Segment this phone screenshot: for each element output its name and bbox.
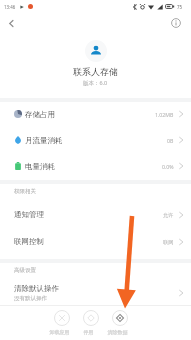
staticText: 清除默认操作 (14, 284, 59, 293)
button[interactable]: 存储占用 (0, 102, 191, 128)
staticText: 联网 (163, 239, 174, 246)
staticText: 权限相关 (14, 188, 36, 195)
staticText: 没有默认操作 (14, 295, 47, 302)
button[interactable]: 卸载应用 (47, 306, 76, 335)
staticText: 13:46 (4, 4, 16, 10)
staticText: 停用 (74, 329, 103, 335)
staticText: 月流量消耗 (25, 136, 63, 145)
staticText: 0B (167, 137, 174, 144)
staticText: 电量消耗 (25, 162, 55, 171)
staticText: 0.0% (162, 163, 174, 170)
button[interactable]: 通知管理 (0, 202, 191, 229)
staticText: 通知管理 (14, 210, 44, 219)
staticText: 高级设置 (14, 267, 36, 274)
staticText: 存储占用 (25, 110, 55, 119)
staticText: 联系人存储 (73, 66, 118, 77)
button[interactable]: 清除默认操作 (0, 281, 191, 305)
button[interactable]: 停用 (76, 306, 105, 335)
button[interactable]: 电量消耗 (0, 154, 191, 180)
staticText: 版本：6.0 (83, 79, 108, 87)
staticText: 清除数据 (103, 329, 132, 335)
staticText: 允许 (163, 212, 174, 219)
button[interactable]: Back (2, 14, 20, 32)
staticText: 75 (177, 4, 183, 10)
button[interactable]: Info (167, 14, 185, 32)
staticText: 卸载应用 (45, 329, 74, 335)
staticText: 1.02MB (155, 111, 174, 118)
button[interactable]: 清除数据 (105, 306, 134, 335)
button[interactable]: 月流量消耗 (0, 128, 191, 154)
staticText: 联网控制 (14, 237, 44, 246)
button[interactable]: 联网控制 (0, 229, 191, 256)
